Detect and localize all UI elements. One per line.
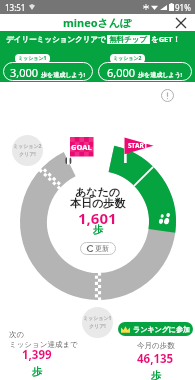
button[interactable]: Close — [173, 15, 189, 31]
staticText: 歩を達成しよう! — [138, 71, 183, 79]
staticText: 次の — [9, 330, 25, 339]
button[interactable]: ランキングに参加 — [118, 322, 193, 336]
staticText: ランキングに参加 — [133, 325, 190, 334]
staticText: 6,000 — [107, 65, 136, 80]
staticText: ミッション1 — [83, 315, 112, 322]
staticText: クリア! — [19, 151, 36, 158]
staticText: GOAL — [71, 142, 92, 152]
button[interactable]: 3,000 — [3, 54, 93, 81]
staticText: ミッション達成まで — [9, 340, 78, 349]
staticText: クリア! — [89, 323, 106, 330]
staticText: 無料チップ — [109, 35, 148, 44]
staticText: あなたの — [75, 185, 121, 199]
staticText: 今月の歩数 — [137, 341, 175, 350]
staticText: デイリーミッションクリアで — [6, 35, 106, 44]
staticText: 歩 — [93, 223, 103, 236]
staticText: 更新 — [95, 244, 109, 253]
button[interactable]: ミッション1 — [82, 307, 113, 338]
button[interactable]: Info — [158, 86, 176, 104]
staticText: START — [128, 141, 148, 150]
staticText: 歩 — [32, 365, 42, 378]
staticText: mineoさんぽ — [63, 15, 132, 30]
staticText: 1,399 — [22, 347, 52, 363]
staticText: 13:51 — [5, 2, 26, 13]
staticText: ミッション2 — [13, 143, 42, 150]
staticText: 歩 — [151, 369, 161, 380]
staticText: 3,000 — [10, 65, 39, 80]
staticText: ミッション2 — [113, 55, 142, 62]
staticText: ミッション1 — [18, 55, 47, 62]
staticText: 91% — [175, 2, 191, 13]
staticText: 本日の歩数 — [70, 196, 126, 210]
staticText: をGET！ — [151, 34, 181, 44]
staticText: 46,135 — [137, 351, 174, 367]
staticText: 1,601 — [78, 208, 117, 228]
button[interactable]: ミッション2 — [12, 135, 43, 166]
button[interactable]: 更新 — [80, 242, 116, 255]
staticText: 歩を達成しよう! — [41, 71, 86, 79]
button[interactable]: Goal — [70, 137, 93, 157]
button[interactable]: Start — [126, 140, 150, 151]
button[interactable]: 6,000 — [98, 54, 192, 81]
